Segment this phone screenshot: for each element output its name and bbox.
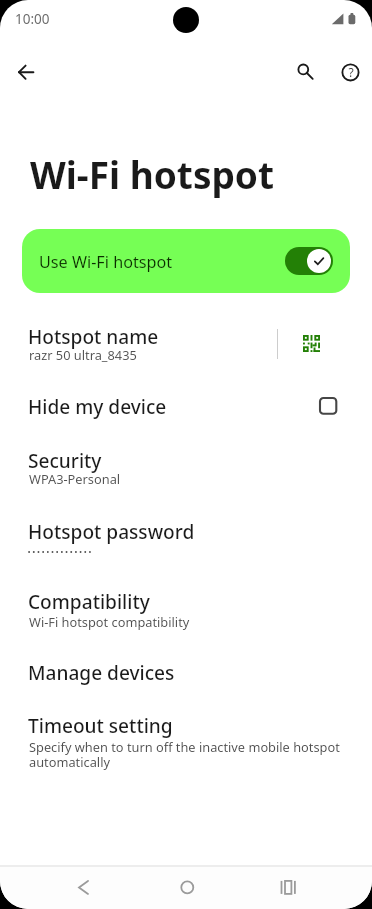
staticText: ? (348, 64, 354, 80)
staticText: Security (28, 448, 102, 474)
staticText: Use Wi-Fi hotspot (39, 251, 173, 273)
staticText: Hotspot password (28, 519, 195, 545)
button[interactable]: Compatibility (0, 585, 372, 656)
staticText: Timeout setting (28, 713, 173, 739)
button[interactable]: Help (327, 49, 372, 94)
staticText: Wi-Fi hotspot (30, 149, 275, 199)
button[interactable]: Hotspot password (0, 515, 372, 585)
button[interactable]: Home (164, 865, 209, 909)
button[interactable]: Manage devices (0, 656, 372, 709)
staticText: Hide my device (28, 394, 167, 420)
staticText: Compatibility (28, 589, 150, 615)
button[interactable]: Timeout setting (0, 709, 372, 789)
staticText: Hotspot name (28, 324, 159, 350)
button[interactable]: Hotspot name (0, 320, 372, 390)
staticText: 10:00 (15, 10, 50, 28)
staticText: Specify when to turn off the inactive mo… (29, 738, 345, 771)
button[interactable]: Security (0, 444, 372, 515)
button[interactable]: Navigate up (3, 49, 48, 94)
staticText: WPA3-Personal (29, 470, 345, 487)
button[interactable]: Back (61, 865, 106, 909)
staticText: Manage devices (28, 660, 175, 686)
button[interactable]: Share hotspot QR code (289, 321, 333, 365)
button[interactable]: Recent apps (265, 865, 310, 909)
staticText: razr 50 ultra_8435 (29, 346, 345, 363)
button[interactable]: Hide my device (0, 390, 372, 444)
button[interactable]: Hide my device (306, 384, 350, 428)
button[interactable]: Search (282, 49, 327, 94)
button[interactable]: Use Wi-Fi hotspot (22, 229, 350, 293)
staticText: Wi-Fi hotspot compatibility (29, 613, 345, 630)
